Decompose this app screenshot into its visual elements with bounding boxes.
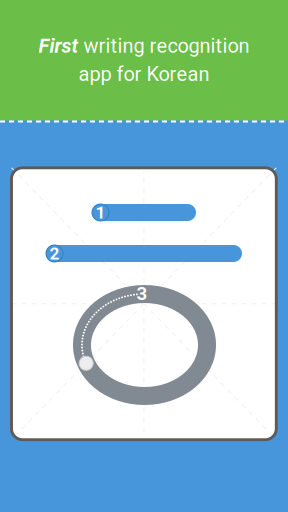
staticText: First writing recognition bbox=[38, 35, 249, 57]
staticText: 3 bbox=[136, 283, 147, 304]
staticText: 1 bbox=[95, 202, 105, 223]
button[interactable]: Practice writing the letter bbox=[11, 168, 276, 440]
staticText: app for Korean bbox=[78, 62, 209, 86]
staticText: 2 bbox=[49, 243, 59, 264]
